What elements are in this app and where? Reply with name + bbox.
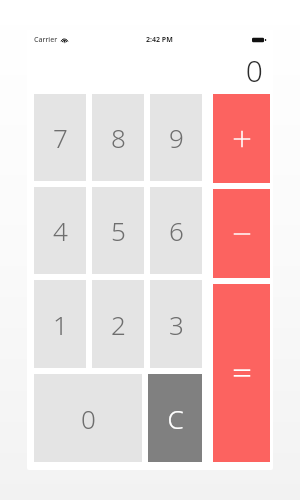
staticText: 0 — [81, 401, 96, 436]
staticText: 6 — [169, 213, 184, 248]
staticText: 2 — [111, 307, 126, 342]
staticText: C — [167, 401, 184, 436]
staticText: 1 — [53, 307, 68, 342]
button[interactable]: Plus — [213, 94, 270, 183]
staticText: 8 — [111, 120, 126, 155]
button[interactable]: 0 — [34, 374, 142, 462]
button[interactable]: 6 — [150, 187, 202, 274]
button[interactable]: Minus — [213, 189, 270, 278]
button[interactable]: 5 — [92, 187, 144, 274]
staticText: 4 — [53, 213, 68, 248]
button[interactable]: 3 — [150, 280, 202, 368]
button[interactable]: 4 — [34, 187, 86, 274]
staticText: 3 — [169, 307, 184, 342]
staticText: 2:42 PM — [146, 35, 173, 45]
button[interactable]: 2 — [92, 280, 144, 368]
button[interactable]: 1 — [34, 280, 86, 368]
button[interactable]: 8 — [92, 94, 144, 181]
button[interactable]: 7 — [34, 94, 86, 181]
staticText: 9 — [169, 120, 184, 155]
button[interactable]: Equals — [213, 284, 270, 462]
staticText: Carrier — [34, 35, 58, 45]
staticText: 0 — [245, 50, 263, 91]
button[interactable]: 9 — [150, 94, 202, 181]
button[interactable]: C — [148, 374, 202, 462]
staticText: 5 — [111, 213, 126, 248]
staticText: 7 — [53, 120, 68, 155]
